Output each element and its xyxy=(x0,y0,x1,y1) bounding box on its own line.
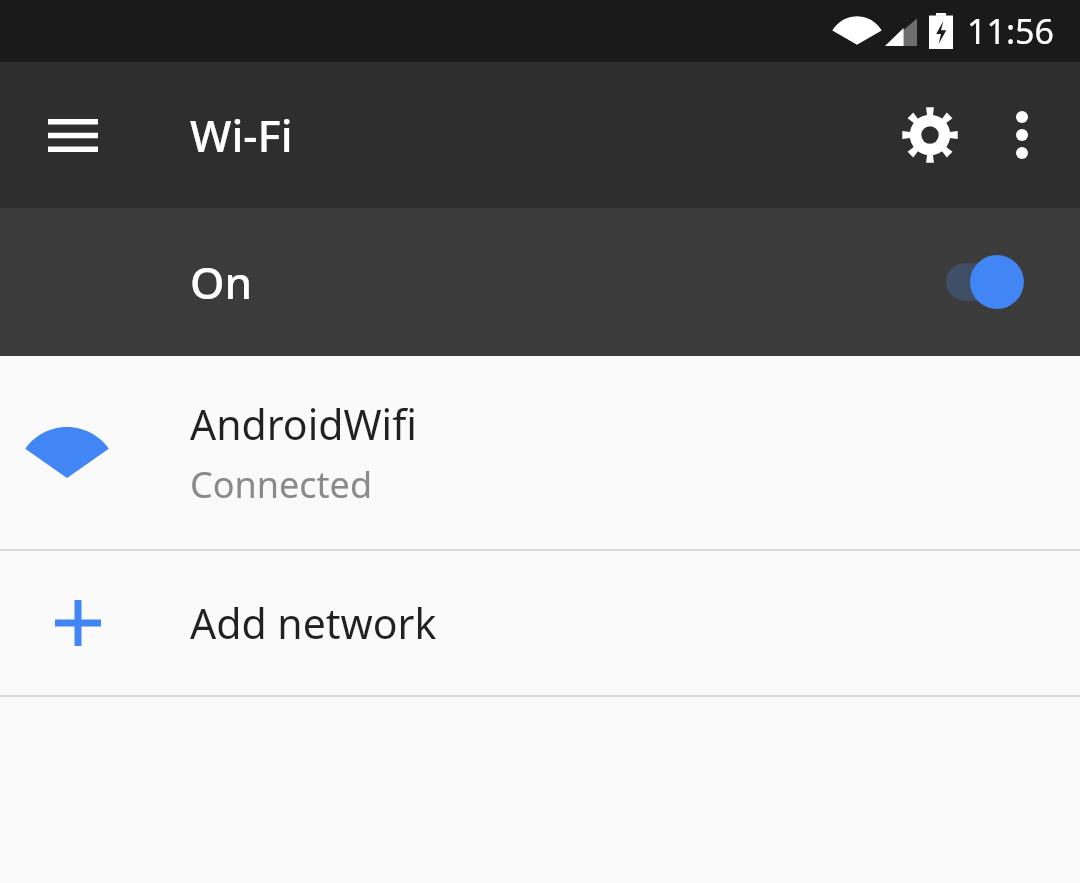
staticText: On xyxy=(190,252,253,312)
button[interactable]: AndroidWifi xyxy=(0,356,1080,549)
button[interactable]: More options xyxy=(978,91,1066,179)
staticText: Add network xyxy=(190,595,437,651)
staticText: Connected xyxy=(190,460,373,509)
button[interactable]: Add network xyxy=(0,551,1080,695)
staticText: AndroidWifi xyxy=(190,396,417,452)
staticText: 11:56 xyxy=(967,8,1054,54)
staticText: Wi-Fi xyxy=(190,105,293,165)
other: Wi-Fi toggle, on xyxy=(946,253,1028,311)
button[interactable]: Open navigation menu xyxy=(28,90,118,180)
button[interactable]: Wi-Fi settings xyxy=(882,87,978,183)
button[interactable]: On xyxy=(0,208,1080,356)
